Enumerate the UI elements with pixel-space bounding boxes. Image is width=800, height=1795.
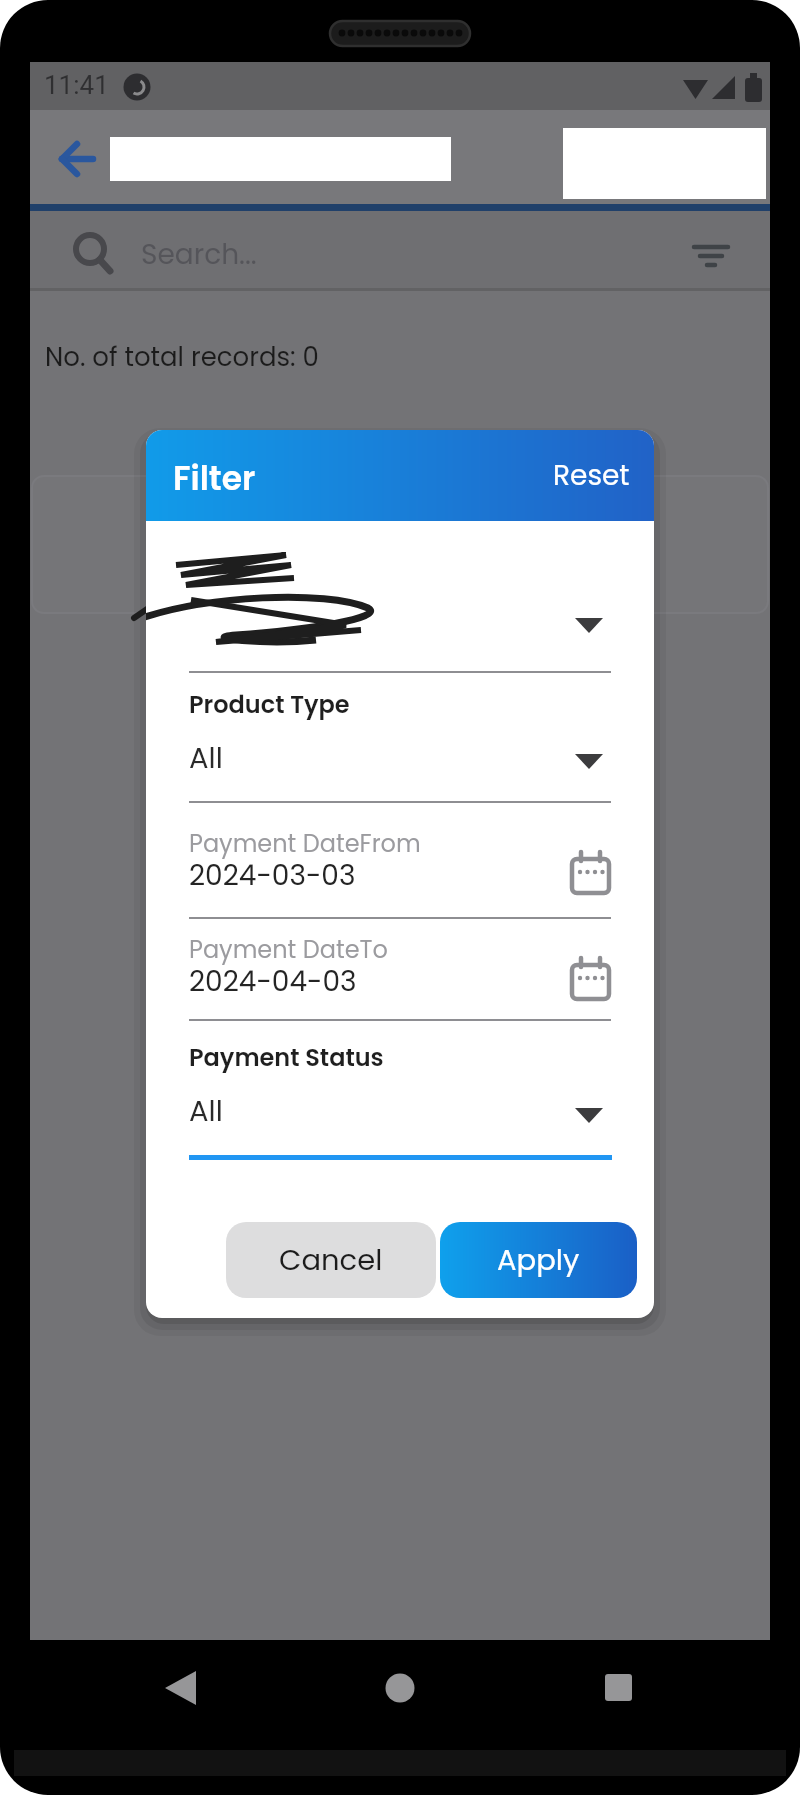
button[interactable]: Apply bbox=[440, 1222, 637, 1298]
staticText: Payment DateFrom bbox=[189, 827, 421, 861]
button[interactable] bbox=[684, 235, 738, 277]
staticText: No. of total records: 0 bbox=[45, 339, 319, 375]
staticText: 11:41 bbox=[44, 70, 109, 100]
staticText: Payment DateTo bbox=[189, 933, 388, 967]
button[interactable]: Reset bbox=[541, 445, 641, 505]
staticText: Search... bbox=[141, 235, 257, 274]
staticText: All bbox=[189, 738, 223, 779]
button[interactable] bbox=[556, 950, 616, 1010]
button[interactable] bbox=[556, 845, 616, 905]
staticText: Cancel bbox=[279, 1240, 383, 1281]
button[interactable] bbox=[189, 735, 612, 805]
button[interactable] bbox=[189, 605, 612, 675]
staticText: Product Type bbox=[189, 688, 350, 722]
button[interactable] bbox=[60, 220, 620, 280]
button[interactable] bbox=[189, 1090, 612, 1160]
staticText: 2024-04-03 bbox=[189, 962, 357, 1001]
staticText: Payment Status bbox=[189, 1041, 384, 1075]
staticText: Reset bbox=[553, 456, 630, 495]
staticText: All bbox=[189, 1091, 223, 1132]
staticText: 2024-03-03 bbox=[189, 856, 356, 895]
button[interactable]: Cancel bbox=[226, 1222, 436, 1298]
button[interactable] bbox=[48, 140, 92, 180]
staticText: Apply bbox=[497, 1240, 580, 1281]
staticText: Filter bbox=[173, 455, 256, 501]
